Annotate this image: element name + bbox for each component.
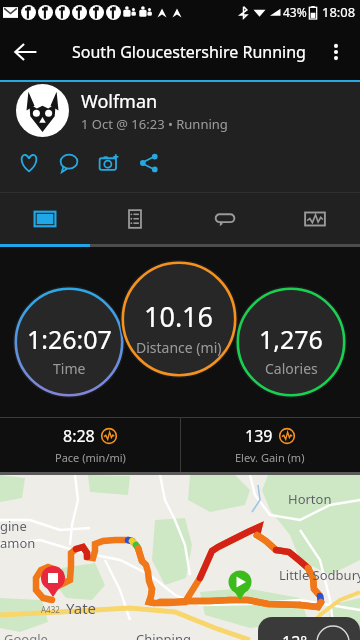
- staticText: Google: [4, 630, 48, 640]
- staticText: Little Sodbury: [279, 566, 360, 584]
- staticText: amon: [0, 534, 36, 552]
- staticText: 18:08: [322, 3, 356, 21]
- staticText: 10.16: [144, 298, 214, 335]
- staticText: 1:26:07: [27, 322, 112, 356]
- staticText: South Gloucestershire Running: [72, 41, 306, 63]
- staticText: 139: [245, 425, 273, 447]
- staticText: Distance (mi): [136, 338, 222, 357]
- button[interactable]: Add photo: [89, 143, 129, 183]
- button[interactable]: Share: [129, 143, 169, 183]
- button[interactable]: Wolfman: [0, 82, 360, 139]
- button[interactable]: Back: [5, 32, 45, 72]
- staticText: 1,276: [259, 322, 323, 356]
- button[interactable]: 139: [180, 418, 360, 472]
- staticText: 12°: [282, 631, 308, 640]
- button[interactable]: More options: [317, 33, 355, 71]
- button[interactable]: 12°: [258, 617, 360, 640]
- button[interactable]: Graph: [270, 193, 360, 244]
- staticText: Yate: [66, 598, 97, 618]
- staticText: A432: [41, 604, 60, 615]
- staticText: Time: [53, 359, 86, 378]
- staticText: gine: [0, 517, 27, 535]
- button[interactable]: Details: [90, 193, 180, 244]
- staticText: 1 Oct @ 16:23 • Running: [81, 115, 228, 133]
- button[interactable]: Like: [9, 143, 49, 183]
- button[interactable]: Horton: [0, 475, 360, 640]
- staticText: 8:28: [63, 425, 95, 447]
- button[interactable]: Comment: [49, 143, 89, 183]
- button[interactable]: 1,276: [235, 286, 347, 398]
- staticText: Pace (min/mi): [55, 450, 126, 465]
- button[interactable]: 8:28: [0, 418, 180, 472]
- button[interactable]: 10.16: [120, 260, 238, 378]
- button[interactable]: 1:26:07: [13, 286, 125, 398]
- staticText: Elev. Gain (m): [235, 450, 305, 465]
- button[interactable]: Laps: [180, 193, 270, 244]
- staticText: Horton: [288, 490, 332, 508]
- button[interactable]: Map: [0, 193, 90, 244]
- staticText: 43%: [283, 4, 307, 20]
- staticText: Chipping: [136, 630, 191, 640]
- staticText: Wolfman: [81, 89, 158, 114]
- staticText: Calories: [265, 359, 318, 378]
